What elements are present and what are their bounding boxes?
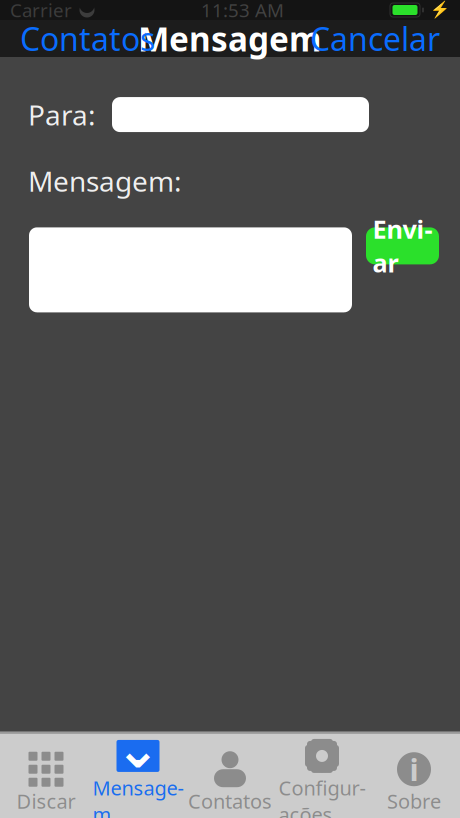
staticText: Enviar bbox=[372, 212, 432, 279]
staticText: Cancelar bbox=[310, 17, 440, 60]
button[interactable]: Recipient field bbox=[112, 97, 369, 132]
button[interactable]: Discar bbox=[0, 747, 92, 818]
staticText: Configurações bbox=[278, 774, 365, 818]
button[interactable]: ⌄ bbox=[92, 733, 184, 818]
staticText: Contatos bbox=[188, 788, 272, 814]
staticText: ⌄ bbox=[115, 719, 160, 779]
button[interactable]: Cancelar bbox=[298, 12, 452, 65]
staticText: Mensagem bbox=[138, 16, 322, 61]
staticText: i bbox=[409, 749, 418, 790]
staticText: Discar bbox=[16, 788, 75, 814]
staticText: 11:53 AM bbox=[201, 0, 284, 22]
staticText: Carrier bbox=[10, 0, 72, 22]
staticText: Contatos bbox=[20, 17, 155, 60]
staticText: Mensagem: bbox=[28, 162, 182, 199]
button[interactable]: Message field bbox=[29, 227, 352, 312]
staticText: Para: bbox=[28, 96, 96, 133]
button[interactable]: Contatos bbox=[184, 747, 276, 818]
button[interactable]: i bbox=[368, 747, 460, 818]
button[interactable]: Configurações bbox=[276, 733, 368, 818]
button[interactable]: Enviar bbox=[366, 227, 439, 264]
button[interactable]: Contatos bbox=[8, 12, 167, 65]
staticText: ⚡ bbox=[430, 1, 450, 19]
staticText: Mensagem bbox=[92, 774, 183, 818]
staticText: Sobre bbox=[387, 788, 441, 814]
